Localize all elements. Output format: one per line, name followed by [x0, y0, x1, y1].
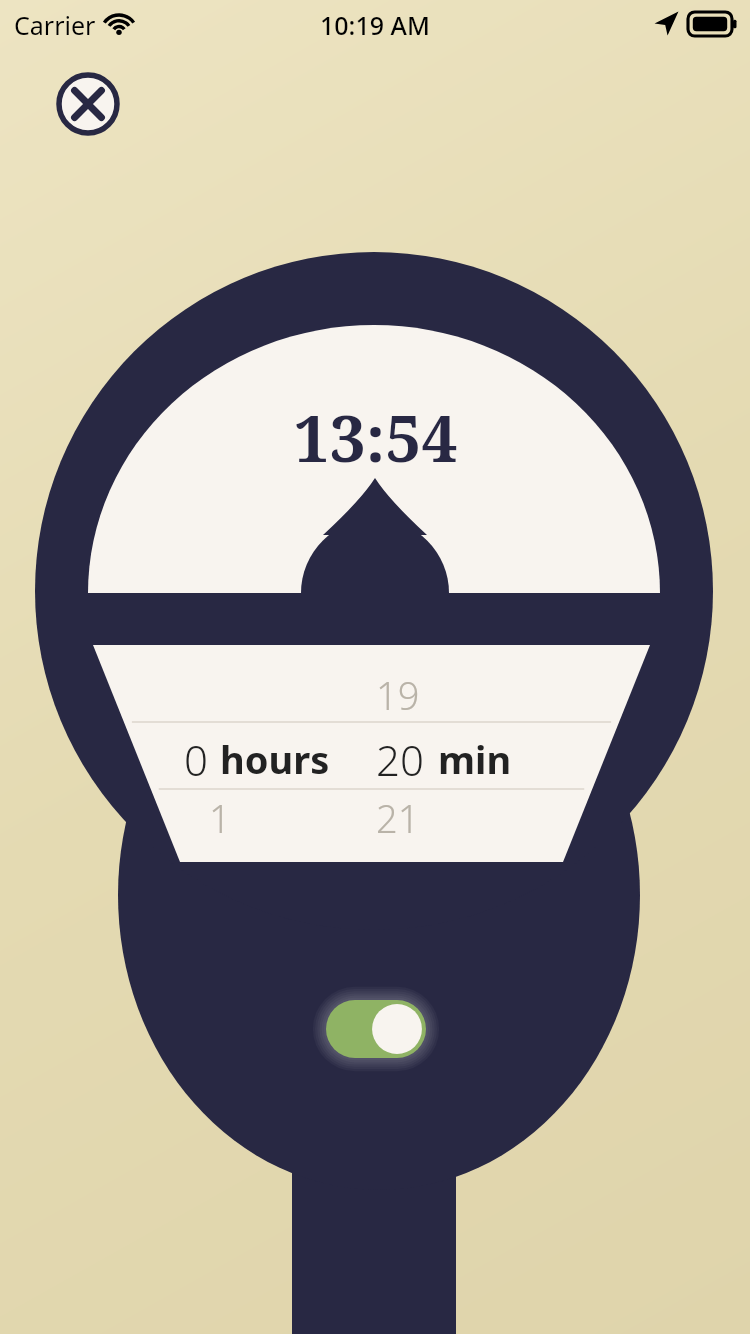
- staticText: 13:54: [293, 394, 458, 481]
- staticText: 19: [376, 669, 420, 721]
- button[interactable]: 19: [300, 668, 496, 722]
- staticText: min: [438, 733, 512, 785]
- staticText: hours: [220, 733, 330, 785]
- button[interactable]: Close: [56, 72, 120, 136]
- staticText: 0: [184, 731, 219, 788]
- button[interactable]: 21: [300, 792, 496, 844]
- button[interactable]: 20: [376, 730, 526, 788]
- button[interactable]: Parking timer on: [326, 1000, 426, 1058]
- staticText: 20: [376, 731, 435, 788]
- staticText: 21: [376, 792, 420, 844]
- button[interactable]: 0: [184, 730, 334, 788]
- staticText: Carrier: [14, 8, 96, 42]
- button[interactable]: 1: [180, 792, 260, 844]
- staticText: 10:19 AM: [320, 8, 430, 42]
- staticText: 1: [209, 792, 231, 844]
